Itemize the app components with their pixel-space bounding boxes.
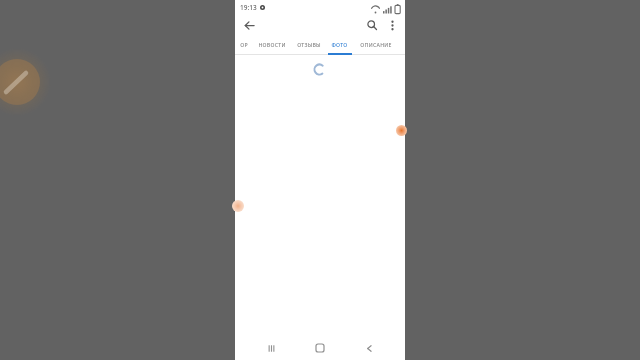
button[interactable]: ОТЗЫВЫ bbox=[291, 36, 326, 53]
button[interactable]: НОВОСТИ bbox=[253, 36, 291, 53]
staticText: ОР bbox=[240, 41, 248, 48]
button[interactable]: Search bbox=[361, 14, 383, 36]
button[interactable]: Recent apps bbox=[258, 336, 284, 360]
button[interactable]: ОР bbox=[235, 36, 253, 53]
button[interactable]: ОПИСАНИЕ bbox=[352, 36, 400, 53]
staticText: ОТЗЫВЫ bbox=[297, 41, 321, 48]
button[interactable]: Back bbox=[238, 14, 260, 36]
button[interactable]: More options bbox=[381, 14, 403, 36]
button[interactable]: ФОТО bbox=[326, 36, 352, 53]
staticText: 19:13 bbox=[240, 3, 257, 12]
button[interactable]: Back bbox=[356, 336, 382, 360]
staticText: ФОТО bbox=[331, 41, 348, 48]
staticText: НОВОСТИ bbox=[258, 41, 286, 48]
staticText: ОПИСАНИЕ bbox=[360, 41, 392, 48]
button[interactable]: Home bbox=[307, 336, 333, 360]
